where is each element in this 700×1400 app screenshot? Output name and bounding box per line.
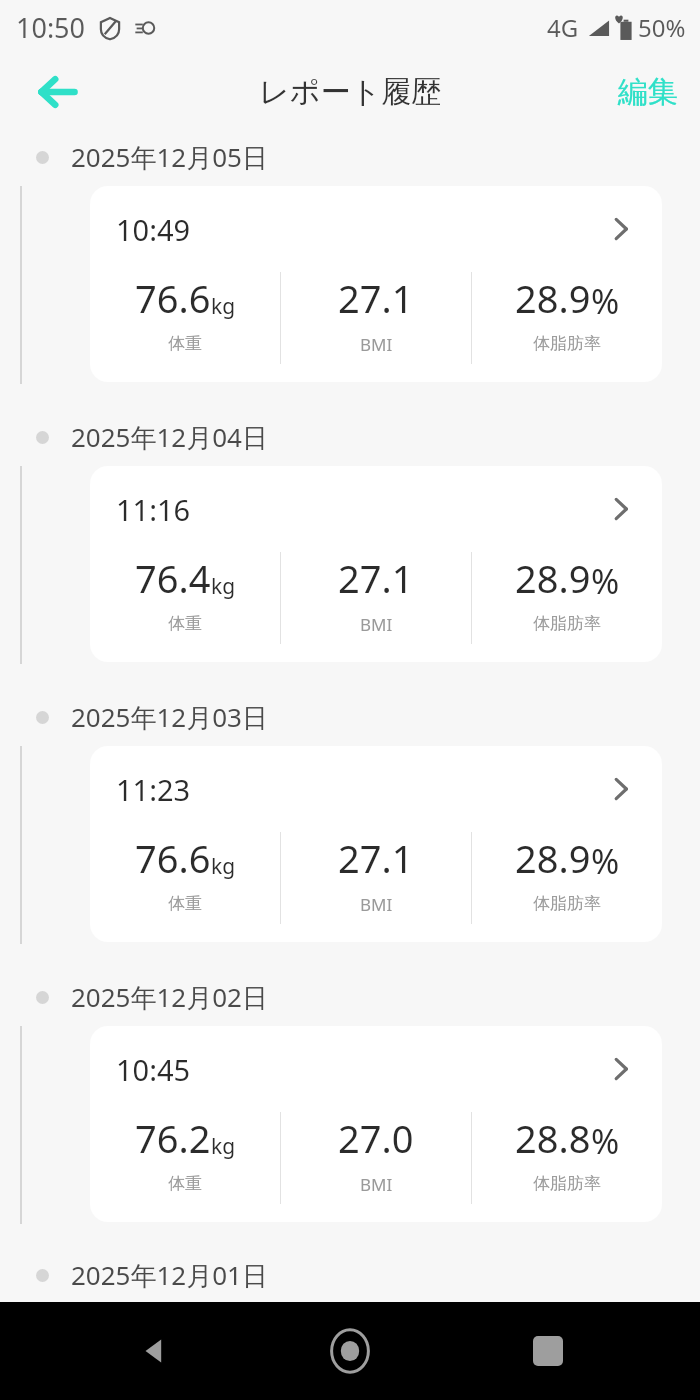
staticText: 体重 bbox=[168, 893, 202, 914]
staticText: 28.8 bbox=[515, 1112, 591, 1164]
staticText: 76.6 bbox=[135, 272, 211, 324]
staticText: 体脂肪率 bbox=[533, 333, 601, 354]
staticText: 体脂肪率 bbox=[533, 893, 601, 914]
staticText: 2025年12月01日 bbox=[71, 1257, 268, 1293]
button[interactable]: Home bbox=[305, 1306, 395, 1396]
staticText: 編集 bbox=[618, 73, 678, 111]
staticText: % bbox=[591, 838, 620, 884]
staticText: 10:49 bbox=[116, 210, 191, 249]
staticText: BMI bbox=[360, 893, 393, 916]
staticText: 28.9 bbox=[515, 552, 591, 604]
staticText: 4G bbox=[547, 11, 579, 44]
button[interactable]: Back bbox=[18, 62, 98, 122]
staticText: 76.2 bbox=[135, 1112, 211, 1164]
staticText: kg bbox=[211, 292, 236, 321]
button[interactable]: 10:49 bbox=[90, 186, 662, 382]
staticText: 体脂肪率 bbox=[533, 1173, 601, 1194]
staticText: 体重 bbox=[168, 333, 202, 354]
staticText: レポート履歴 bbox=[259, 73, 442, 111]
staticText: 体重 bbox=[168, 613, 202, 634]
staticText: 27.1 bbox=[338, 272, 414, 324]
staticText: 27.0 bbox=[338, 1112, 414, 1164]
staticText: % bbox=[591, 558, 620, 604]
button[interactable]: 11:23 bbox=[90, 746, 662, 942]
staticText: 28.9 bbox=[515, 272, 591, 324]
staticText: 76.4 bbox=[135, 552, 211, 604]
staticText: 2025年12月04日 bbox=[71, 419, 268, 455]
button[interactable]: Back bbox=[108, 1306, 198, 1396]
staticText: 2025年12月02日 bbox=[71, 979, 268, 1015]
staticText: 76.6 bbox=[135, 832, 211, 884]
button[interactable]: 編集 bbox=[610, 65, 686, 119]
staticText: 28.9 bbox=[515, 832, 591, 884]
staticText: 10:50 bbox=[16, 9, 86, 46]
staticText: 11:16 bbox=[116, 490, 191, 529]
staticText: kg bbox=[211, 1132, 236, 1161]
button[interactable]: Recents bbox=[503, 1306, 593, 1396]
button[interactable]: 11:16 bbox=[90, 466, 662, 662]
staticText: % bbox=[591, 1118, 620, 1164]
staticText: kg bbox=[211, 852, 236, 881]
staticText: 体脂肪率 bbox=[533, 613, 601, 634]
button[interactable]: 10:45 bbox=[90, 1026, 662, 1222]
staticText: 11:23 bbox=[116, 770, 191, 809]
staticText: 50% bbox=[638, 11, 686, 44]
staticText: 体重 bbox=[168, 1173, 202, 1194]
staticText: BMI bbox=[360, 613, 393, 636]
staticText: 27.1 bbox=[338, 832, 414, 884]
staticText: BMI bbox=[360, 1173, 393, 1196]
staticText: BMI bbox=[360, 333, 393, 356]
staticText: 10:45 bbox=[116, 1050, 191, 1089]
staticText: 27.1 bbox=[338, 552, 414, 604]
staticText: % bbox=[591, 278, 620, 324]
staticText: 2025年12月03日 bbox=[71, 699, 268, 735]
staticText: kg bbox=[211, 572, 236, 601]
staticText: 2025年12月05日 bbox=[71, 139, 268, 175]
